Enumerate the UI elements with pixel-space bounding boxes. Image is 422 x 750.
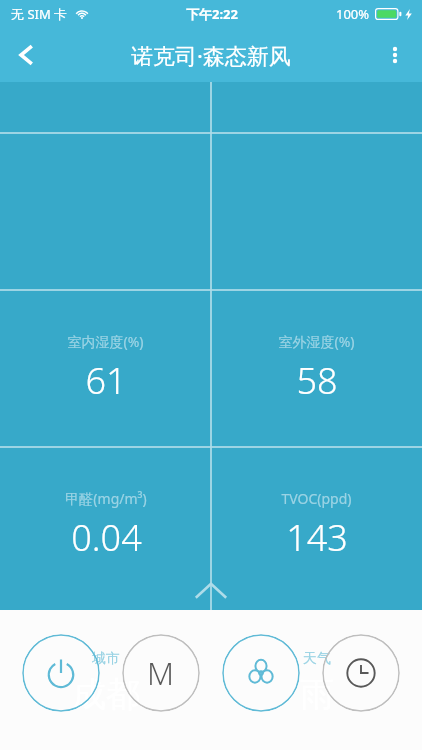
button[interactable]: TVOC(ppd) (211, 447, 422, 604)
button[interactable]: 室内湿度(%) (0, 290, 211, 447)
button[interactable]: Fan speed (222, 634, 300, 712)
button[interactable]: More options (368, 28, 422, 82)
staticText: 甲醛(mg/m³) (65, 489, 147, 508)
staticText: 0.04 (71, 513, 142, 562)
button[interactable]: Back (0, 28, 54, 82)
button[interactable]: 甲醛(mg/m³) (0, 447, 211, 604)
button[interactable]: 室外湿度(%) (211, 290, 422, 447)
staticText: M (147, 652, 175, 694)
staticText: 下午2:22 (186, 5, 238, 23)
staticText: 城市 (92, 650, 120, 668)
staticText: TVOC(ppd) (281, 489, 352, 508)
button[interactable]: Timer (322, 634, 400, 712)
staticText: 无 SIM 卡 (11, 5, 68, 23)
button[interactable]: Power (22, 634, 100, 712)
staticText: 室内湿度(%) (67, 332, 144, 351)
button[interactable]: Expand (191, 577, 231, 603)
staticText: 成都 (72, 673, 140, 716)
button[interactable]: 城市 (0, 604, 211, 750)
staticText: 雨 (300, 673, 334, 716)
staticText: 室外湿度(%) (278, 332, 355, 351)
staticText: 61 (85, 356, 127, 405)
button[interactable]: 天气 (211, 604, 422, 750)
button[interactable]: Mode (122, 634, 200, 712)
staticText: 58 (296, 356, 338, 405)
staticText: 诺克司·森态新风 (131, 40, 291, 70)
staticText: 天气 (303, 650, 331, 668)
staticText: 143 (286, 513, 348, 562)
staticText: 100% (336, 5, 370, 23)
